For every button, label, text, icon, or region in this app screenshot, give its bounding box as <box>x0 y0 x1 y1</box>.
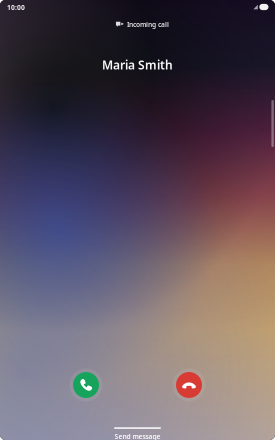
button[interactable]: Decline <box>172 368 206 402</box>
staticText: Maria Smith <box>102 57 173 73</box>
button[interactable]: Send message <box>0 424 275 440</box>
staticText: 10:00 <box>7 3 25 12</box>
staticText: Incoming call <box>127 20 169 29</box>
button[interactable]: Answer <box>69 368 103 402</box>
staticText: Send message <box>114 432 160 440</box>
